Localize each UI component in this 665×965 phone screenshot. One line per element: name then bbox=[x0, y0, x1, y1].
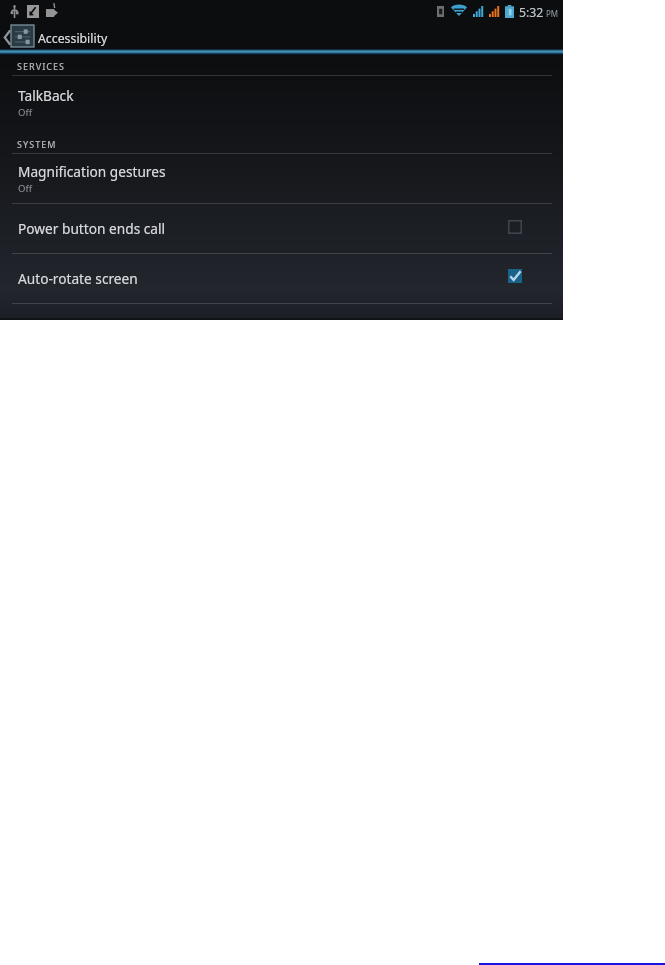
button[interactable]: Auto-rotate screen bbox=[0, 258, 563, 308]
button[interactable]: Navigate up bbox=[0, 24, 563, 50]
button[interactable]: TalkBack bbox=[0, 79, 563, 128]
other: Navigate up bbox=[4, 31, 10, 44]
staticText: Off bbox=[18, 106, 32, 119]
staticText: Off bbox=[18, 182, 32, 195]
staticText: 5:32 bbox=[519, 4, 544, 21]
staticText: PM bbox=[546, 8, 559, 19]
staticText: TalkBack bbox=[18, 86, 74, 105]
staticText: Accessibility bbox=[38, 30, 108, 47]
staticText: SYSTEM bbox=[17, 138, 57, 150]
staticText: Magnification gestures bbox=[18, 162, 166, 181]
button[interactable]: Power button ends call bbox=[0, 208, 563, 258]
staticText: Auto-rotate screen bbox=[18, 269, 138, 288]
button[interactable]: Magnification gestures bbox=[0, 155, 563, 204]
staticText: Power button ends call bbox=[18, 219, 166, 238]
staticText: SERVICES bbox=[17, 60, 66, 72]
